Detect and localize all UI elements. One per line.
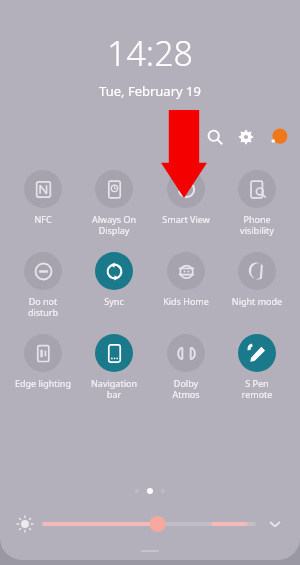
staticText: Smart View [152,213,220,225]
button[interactable]: Edge lighting [9,334,77,389]
staticText: Navigation bar [80,377,148,400]
staticText: Phone visibility [223,213,291,236]
staticText: Night mode [223,295,291,307]
button[interactable]: Kids Home [152,252,220,307]
button[interactable]: Smart View [152,170,220,225]
staticText: Always On Display [80,213,148,236]
button[interactable]: Expand brightness settings [262,511,288,537]
button[interactable]: Dolby Atmos [152,334,220,400]
staticText: Sync [80,295,148,307]
button[interactable]: Always On Display [80,170,148,236]
button[interactable]: Phone visibility [223,170,291,236]
staticText: 14:28 [0,30,300,76]
button[interactable]: User account [264,122,294,152]
staticText: Tue, February 19 [0,82,300,100]
button[interactable]: Sync [80,252,148,307]
staticText: NFC [9,213,77,225]
button[interactable]: Do not disturb [9,252,77,318]
button[interactable] [42,511,256,537]
button[interactable]: Brightness [12,511,38,537]
staticText: Do not disturb [9,295,77,318]
staticText: S Pen remote [223,377,291,400]
button[interactable]: S Pen remote [223,334,291,400]
staticText: Kids Home [152,295,220,307]
staticText: Edge lighting [9,377,77,389]
button[interactable]: Navigation bar [80,334,148,400]
button[interactable]: Settings [231,122,261,152]
button[interactable]: Night mode [223,252,291,307]
button[interactable]: Search [200,122,230,152]
button[interactable]: NFC [9,170,77,225]
staticText: Dolby Atmos [152,377,220,400]
